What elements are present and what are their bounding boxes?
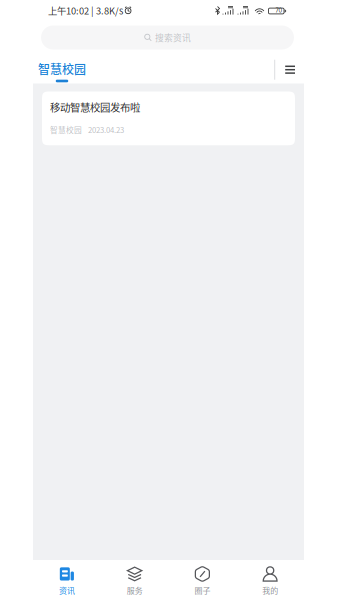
button[interactable]: 移动智慧校园发布啦 (42, 91, 295, 145)
button[interactable]: 我的 (236, 560, 304, 600)
staticText: 70 (275, 7, 282, 14)
button[interactable]: 资讯 (33, 560, 101, 600)
staticText: 移动智慧校园发布啦 (50, 99, 140, 115)
staticText: 智慧校园 (38, 60, 86, 77)
button[interactable]: 圈子 (168, 560, 236, 600)
button[interactable]: 服务 (101, 560, 169, 600)
button[interactable]: 菜单 (275, 49, 304, 83)
staticText: 搜索资讯 (155, 31, 191, 44)
staticText: 服务 (127, 584, 143, 596)
staticText: 圈子 (194, 584, 210, 596)
staticText: 资讯 (59, 584, 75, 596)
button[interactable]: 搜索资讯 (41, 25, 294, 49)
staticText: 上午10:02 | 3.8K/s (48, 4, 123, 17)
staticText: 2023.04.23 (88, 124, 124, 135)
button[interactable]: 智慧校园 (33, 50, 91, 82)
staticText: 我的 (262, 584, 278, 596)
staticText: 智慧校园 (50, 124, 82, 135)
